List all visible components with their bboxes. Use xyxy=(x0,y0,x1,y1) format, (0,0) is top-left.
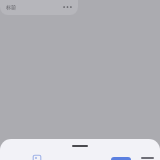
button[interactable]: Menu xyxy=(141,157,154,159)
staticText: 标题 xyxy=(6,4,16,10)
button[interactable]: Confirm xyxy=(111,157,131,160)
button[interactable]: More options xyxy=(61,2,74,12)
button[interactable]: 标题 xyxy=(0,0,78,15)
button[interactable]: Gallery xyxy=(31,154,43,160)
button[interactable]: Gallery xyxy=(0,139,160,160)
